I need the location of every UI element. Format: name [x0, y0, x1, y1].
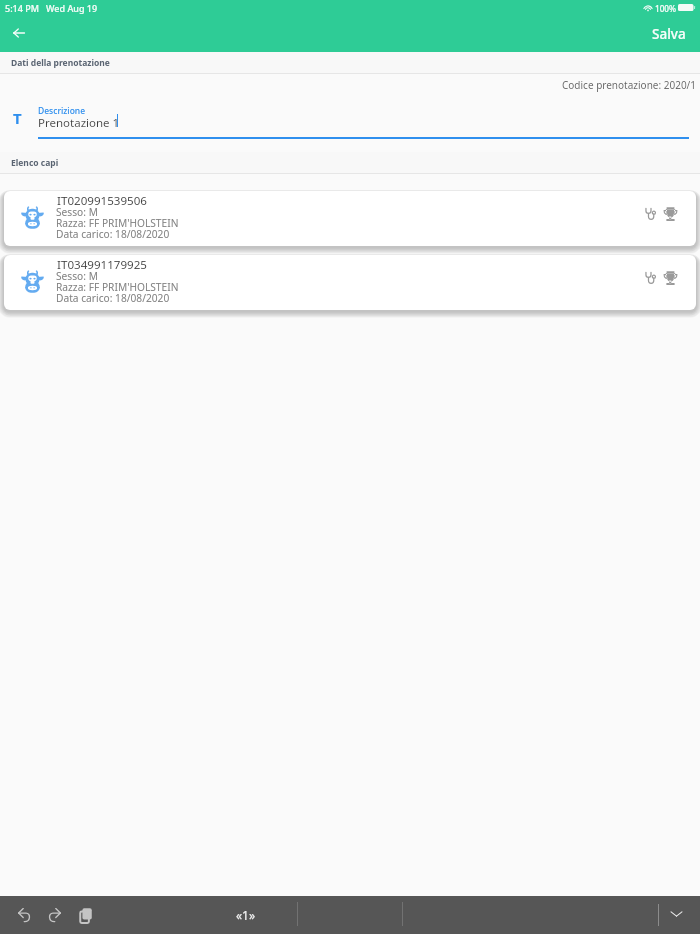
staticText: Dati della prenotazione: [11, 57, 110, 69]
staticText: 100%: [655, 3, 677, 14]
staticText: Data carico: 18/08/2020: [56, 291, 170, 305]
staticText: IT034991179925: [57, 257, 147, 273]
staticText: Data carico: 18/08/2020: [56, 227, 170, 241]
staticText: Salva: [652, 25, 686, 43]
staticText: Descrizione: [38, 105, 86, 117]
button[interactable]: Hide keyboard: [661, 899, 691, 929]
button[interactable]: Back: [4, 18, 34, 48]
staticText: Codice prenotazione: 2020/1: [562, 78, 697, 92]
button[interactable]: Premi: [655, 199, 685, 229]
button[interactable]: Undo: [9, 900, 39, 930]
staticText: Prenotazione 1: [38, 115, 120, 131]
staticText: Sesso: M: [56, 269, 98, 283]
button[interactable]: IT034991179925: [4, 255, 696, 310]
staticText: 5:14 PM Wed Aug 19: [5, 2, 98, 14]
staticText: T: [13, 108, 22, 128]
button[interactable]: Salva: [641, 20, 700, 52]
button[interactable]: Redo: [39, 900, 69, 930]
staticText: «1»: [236, 907, 256, 923]
button[interactable]: Visita: [636, 263, 666, 293]
staticText: Elenco capi: [11, 157, 59, 169]
button[interactable]: «1»: [226, 900, 265, 930]
staticText: IT020991539506: [57, 193, 147, 209]
button[interactable]: IT020991539506: [4, 191, 696, 246]
button[interactable]: Paste: [71, 900, 101, 930]
staticText: Sesso: M: [56, 205, 98, 219]
staticText: Razza: FF PRIM'HOLSTEIN: [56, 280, 179, 294]
button[interactable]: Visita: [636, 199, 666, 229]
button[interactable]: Premi: [655, 263, 685, 293]
staticText: Razza: FF PRIM'HOLSTEIN: [56, 216, 179, 230]
